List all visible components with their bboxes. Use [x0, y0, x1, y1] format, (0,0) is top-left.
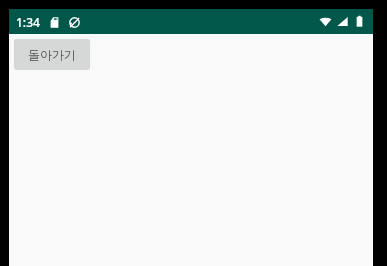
- other: Wi-Fi: [319, 15, 332, 28]
- other: Battery: [353, 15, 366, 28]
- other: SD card: [48, 16, 61, 29]
- other: Sync disabled: [68, 16, 81, 29]
- button[interactable]: 돌아가기: [14, 39, 90, 70]
- other: Mobile signal: [336, 15, 349, 28]
- staticText: 1:34: [16, 14, 40, 30]
- staticText: 돌아가기: [28, 47, 76, 62]
